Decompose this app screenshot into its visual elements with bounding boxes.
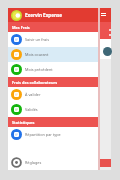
button[interactable]: Mois précédent (8, 62, 98, 77)
staticText: Validés (25, 107, 38, 112)
button[interactable]: Mois courant (8, 47, 98, 62)
button[interactable]: Saisir un frais (8, 32, 98, 47)
other: List (101, 13, 106, 17)
button[interactable]: Validés (8, 102, 98, 117)
button[interactable]: À valider (8, 87, 98, 102)
staticText: Mois courant (25, 52, 49, 57)
staticText: Saisir un frais (25, 37, 49, 42)
staticText: Frais des collaborateurs (12, 80, 58, 85)
button[interactable]: Settings (8, 155, 98, 170)
staticText: Répartition par type (25, 132, 61, 137)
staticText: À valider (25, 92, 41, 97)
staticText: Exervin Expense (25, 12, 63, 18)
other: Settings (11, 157, 22, 168)
staticText: Statistiques (12, 120, 35, 125)
button[interactable]: Exervin Expense (8, 8, 98, 22)
staticText: Réglages (25, 160, 42, 165)
button[interactable]: Répartition par type (8, 127, 98, 142)
staticText: Mes Frais (12, 25, 30, 30)
staticText: Mois précédent (25, 67, 53, 72)
